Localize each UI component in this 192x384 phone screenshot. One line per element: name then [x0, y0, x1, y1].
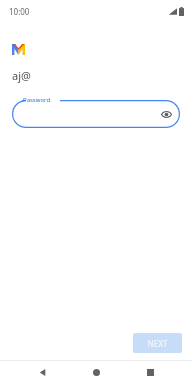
- button[interactable]: Home: [84, 360, 108, 384]
- staticText: NEXT: [147, 338, 168, 349]
- button[interactable]: Back: [30, 360, 54, 384]
- button[interactable]: NEXT: [133, 333, 182, 353]
- button[interactable]: Show password: [159, 107, 173, 121]
- button[interactable]: Password: [12, 100, 180, 128]
- staticText: aj@: [12, 68, 31, 83]
- button[interactable]: Recent apps: [138, 360, 162, 384]
- staticText: Password: [23, 96, 51, 104]
- staticText: 10:00: [9, 6, 30, 17]
